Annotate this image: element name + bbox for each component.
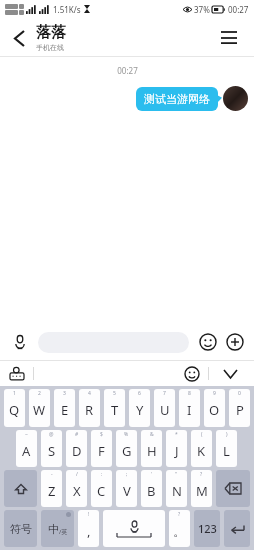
staticText: Y [136,401,144,419]
staticText: D [72,442,82,460]
button[interactable]: 6 [129,389,150,427]
staticText: C [97,482,106,500]
button[interactable]: 1 [4,389,25,427]
staticText: L [223,442,230,460]
button[interactable]: 符号 [4,510,37,547]
staticText: 8 [188,390,191,397]
staticText: P [236,401,244,419]
staticText: V [123,482,131,500]
staticText: W [33,401,46,419]
staticText: E [61,401,69,419]
button[interactable]: - [41,470,62,507]
staticText: R [85,401,94,419]
staticText: 2 [38,390,41,397]
staticText: 手机在线 [36,43,64,52]
button[interactable]: & [141,430,162,467]
button[interactable]: " [166,470,187,507]
button[interactable]: ; [116,470,137,507]
button[interactable]: / [66,470,87,507]
staticText: F [98,442,105,460]
button[interactable]: More [224,331,246,353]
staticText: ; [126,471,128,478]
button[interactable]: ? [191,470,212,507]
button[interactable]: 0 [229,389,250,427]
button[interactable]: Enter [224,510,250,547]
staticText: ? [178,511,181,518]
staticText: & [150,431,154,438]
staticText: 0 [238,390,241,397]
button[interactable]: 测试当游网络 [136,86,248,111]
button[interactable]: % [116,430,137,467]
staticText: 。 [173,523,186,539]
staticText: / [76,471,78,478]
button[interactable]: ! [78,510,99,547]
button[interactable]: Hide keyboard [219,363,241,385]
staticText: , [87,522,91,540]
staticText: $ [100,431,103,438]
staticText: K [197,442,206,460]
button[interactable]: Emoji [197,331,219,353]
staticText: 6 [138,390,141,397]
staticText: T [111,401,119,419]
staticText: 落落 [36,23,66,42]
button[interactable]: Input method [7,364,27,384]
staticText: A [22,442,31,460]
staticText: 9 [213,390,216,397]
staticText: * [175,431,178,438]
staticText: G [122,442,132,460]
staticText: ~ [25,431,28,438]
staticText: 3 [63,390,66,397]
button[interactable]: # [66,430,87,467]
button[interactable]: ( [191,430,212,467]
staticText: O [209,401,220,419]
button[interactable]: 中 [41,510,74,547]
button[interactable]: Shift [4,470,37,507]
staticText: 5 [113,390,116,397]
button[interactable]: Avatar [223,86,248,111]
staticText: ) [226,431,228,438]
button[interactable]: ~ [16,430,37,467]
button[interactable]: 3 [54,389,75,427]
button[interactable]: 8 [179,389,200,427]
staticText: H [147,442,157,460]
button[interactable]: 落落 [36,23,66,52]
button[interactable]: 4 [79,389,100,427]
staticText: @ [49,431,54,438]
staticText: " [175,471,178,478]
button[interactable]: 5 [104,389,125,427]
staticText: I [187,401,192,419]
staticText: - [51,471,53,478]
button[interactable]: 123 [194,510,220,547]
staticText: Z [48,482,56,500]
staticText: ? [200,471,203,478]
staticText: # [75,431,79,438]
button[interactable]: ' [141,470,162,507]
button[interactable]: Back [8,27,30,49]
button[interactable]: 9 [204,389,225,427]
staticText: N [172,482,182,500]
button[interactable]: : [91,470,112,507]
button[interactable]: ? [169,510,190,547]
staticText: /英 [59,528,68,536]
button[interactable]: 7 [154,389,175,427]
button[interactable]: ) [216,430,237,467]
staticText: % [124,431,129,438]
staticText: U [160,401,170,419]
button[interactable]: 2 [29,389,50,427]
button[interactable]: $ [91,430,112,467]
staticText: J [175,442,179,460]
staticText: ! [88,511,90,518]
button[interactable]: Menu [216,25,242,51]
staticText: 4 [88,390,91,397]
button[interactable]: * [166,430,187,467]
button[interactable]: Space [103,510,165,547]
button[interactable]: Backspace [216,470,250,507]
button[interactable]: Voice input [8,330,32,354]
button[interactable]: @ [41,430,62,467]
staticText: 37% [194,4,210,15]
staticText: X [73,482,81,500]
button[interactable]: Emoji keyboard [182,364,202,384]
staticText: B [147,482,156,500]
staticText: 00:27 [228,4,249,15]
